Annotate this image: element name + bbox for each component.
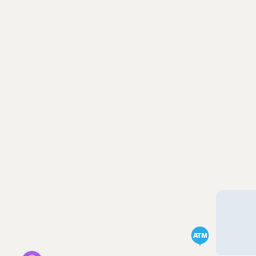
button[interactable]: ATM: [191, 226, 209, 246]
staticText: ATM: [193, 231, 207, 240]
